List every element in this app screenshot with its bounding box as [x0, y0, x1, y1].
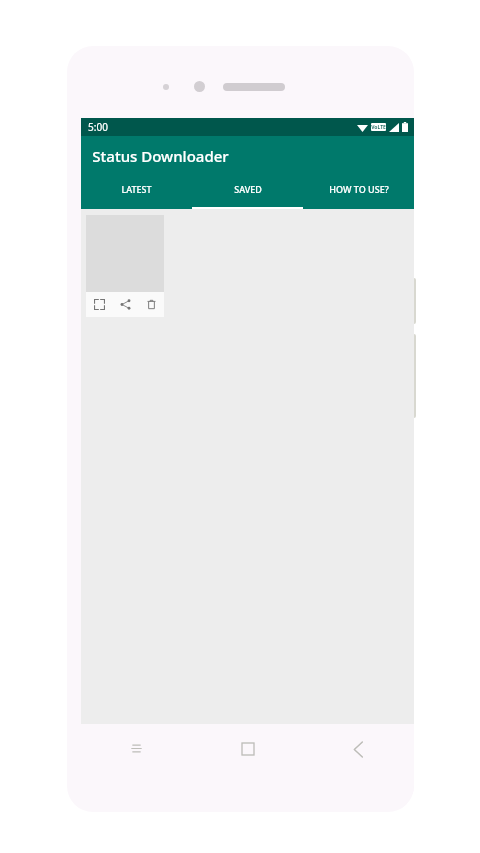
- button[interactable]: HOW TO USE?: [303, 176, 414, 209]
- staticText: 5:00: [88, 120, 108, 134]
- staticText: HOW TO USE?: [329, 183, 389, 195]
- button[interactable]: Recents: [81, 724, 192, 774]
- button[interactable]: LATEST: [81, 176, 192, 209]
- button[interactable]: Open full screen: [86, 292, 112, 317]
- staticText: Status Downloader: [92, 146, 229, 166]
- button[interactable]: Open full screen: [86, 215, 164, 317]
- button[interactable]: SAVED: [192, 176, 303, 209]
- button[interactable]: Home: [192, 724, 303, 774]
- button[interactable]: Delete: [138, 292, 164, 317]
- staticText: VoLTE: [371, 124, 386, 131]
- staticText: LATEST: [121, 183, 152, 195]
- button[interactable]: Share: [112, 292, 138, 317]
- button[interactable]: Back: [303, 724, 414, 774]
- staticText: SAVED: [234, 183, 262, 195]
